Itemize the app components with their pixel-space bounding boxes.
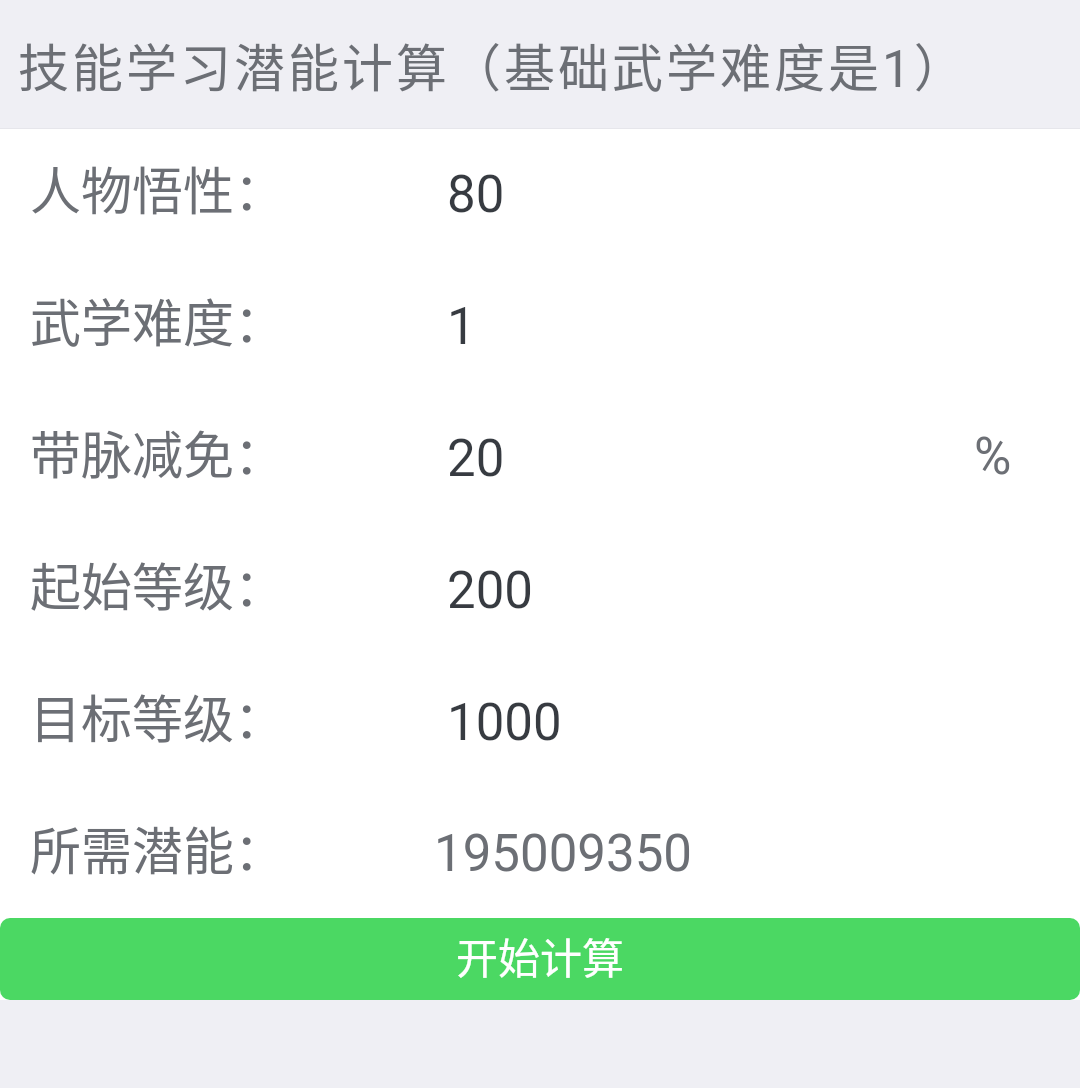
- button[interactable]: 武学难度：: [0, 260, 1080, 392]
- staticText: 所需潜能：: [30, 811, 286, 885]
- button[interactable]: 开始计算: [0, 918, 1080, 1000]
- staticText: 200: [447, 561, 533, 621]
- staticText: 195009350: [434, 824, 692, 884]
- staticText: 人物悟性：: [30, 151, 286, 225]
- button[interactable]: 目标等级：: [0, 656, 1080, 788]
- button[interactable]: 带脉减免：: [0, 392, 1080, 524]
- staticText: 开始计算: [456, 925, 625, 986]
- staticText: 20: [447, 429, 505, 489]
- staticText: %: [974, 427, 1012, 487]
- staticText: 1: [447, 297, 476, 357]
- button[interactable]: 起始等级：: [0, 524, 1080, 656]
- staticText: 武学难度：: [30, 283, 286, 357]
- staticText: 80: [447, 165, 505, 225]
- button[interactable]: 人物悟性：: [0, 128, 1080, 260]
- staticText: 带脉减免：: [30, 415, 286, 489]
- staticText: 1000: [447, 693, 562, 753]
- staticText: 目标等级：: [30, 679, 286, 753]
- staticText: 技能学习潜能计算（基础武学难度是1）: [18, 28, 968, 102]
- staticText: 起始等级：: [30, 547, 286, 621]
